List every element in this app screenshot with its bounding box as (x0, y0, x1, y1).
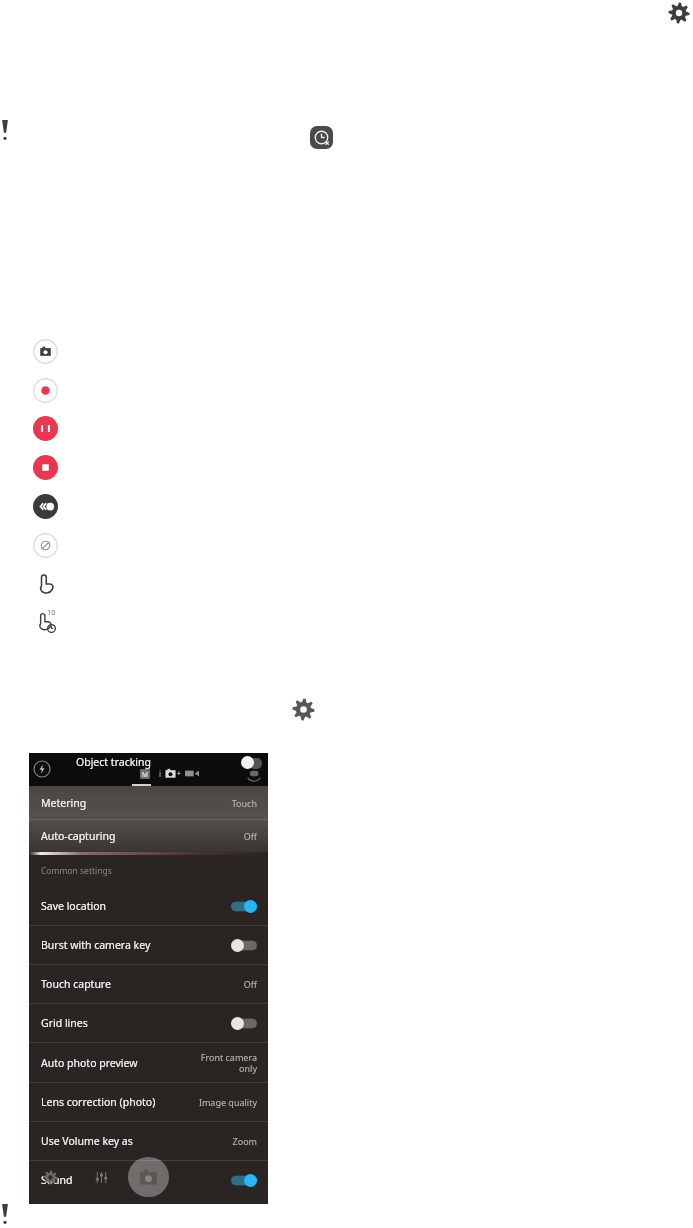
button[interactable]: Touch capture (33, 571, 58, 596)
button[interactable]: Settings (668, 2, 690, 24)
staticText: Save location (41, 899, 106, 913)
button[interactable] (185, 769, 199, 778)
button[interactable]: Grid lines (29, 1004, 268, 1042)
staticText: Image quality (198, 1096, 257, 1108)
button[interactable]: Metering (29, 786, 268, 819)
button[interactable]: Flash (33, 760, 51, 778)
button[interactable]: Record video (33, 378, 58, 403)
staticText: Auto photo preview (41, 1056, 138, 1070)
button[interactable]: Pause recording (33, 416, 58, 441)
staticText: Use Volume key as (41, 1134, 133, 1148)
staticText: M (142, 770, 148, 779)
staticText: Lens correction (photo) (41, 1095, 156, 1109)
button[interactable]: Save location (29, 887, 268, 925)
button[interactable]: Auto-capturing (29, 820, 268, 852)
button[interactable]: Touch capture (29, 965, 268, 1003)
staticText: Front camera only (200, 1051, 257, 1075)
button[interactable]: Settings (43, 1170, 58, 1185)
staticText: + (177, 769, 181, 778)
button[interactable]: Lens correction (photo) (29, 1083, 268, 1121)
staticText: Off (243, 830, 257, 842)
staticText: Grid lines (41, 1016, 88, 1030)
staticText: Zoom (232, 1135, 257, 1147)
staticText: Object tracking (76, 755, 151, 769)
button[interactable]: Slow motion off (33, 533, 58, 558)
staticText: i (159, 768, 162, 779)
button[interactable]: Stop recording (33, 455, 58, 480)
button[interactable]: Shutter (128, 1157, 169, 1197)
staticText: Touch capture (41, 977, 111, 991)
staticText: Common settings (41, 865, 112, 877)
staticText: Auto-capturing (41, 829, 116, 843)
button[interactable]: Object tracking toggle (241, 756, 254, 769)
staticText: Metering (41, 796, 87, 810)
staticText: Burst with camera key (41, 938, 151, 952)
button[interactable]: Adjust (94, 1170, 109, 1185)
button[interactable]: Camera settings (292, 698, 315, 721)
button[interactable]: Auto photo preview (29, 1043, 268, 1082)
button[interactable]: Sound (29, 1161, 268, 1199)
button[interactable]: Take photo (33, 339, 58, 364)
staticText: Sound (41, 1173, 73, 1187)
button[interactable] (164, 767, 177, 780)
button[interactable]: Timer touch capture (33, 610, 58, 635)
button[interactable]: Slow motion (33, 494, 58, 519)
staticText: 10 (47, 607, 56, 617)
button[interactable]: Burst with camera key (29, 926, 268, 964)
button[interactable]: M (140, 769, 150, 779)
staticText: Off (243, 978, 257, 990)
button[interactable]: Self-timer off (310, 126, 333, 149)
button[interactable]: Use Volume key as (29, 1122, 268, 1160)
staticText: Touch (231, 797, 257, 809)
button[interactable]: Switch camera (246, 767, 262, 783)
